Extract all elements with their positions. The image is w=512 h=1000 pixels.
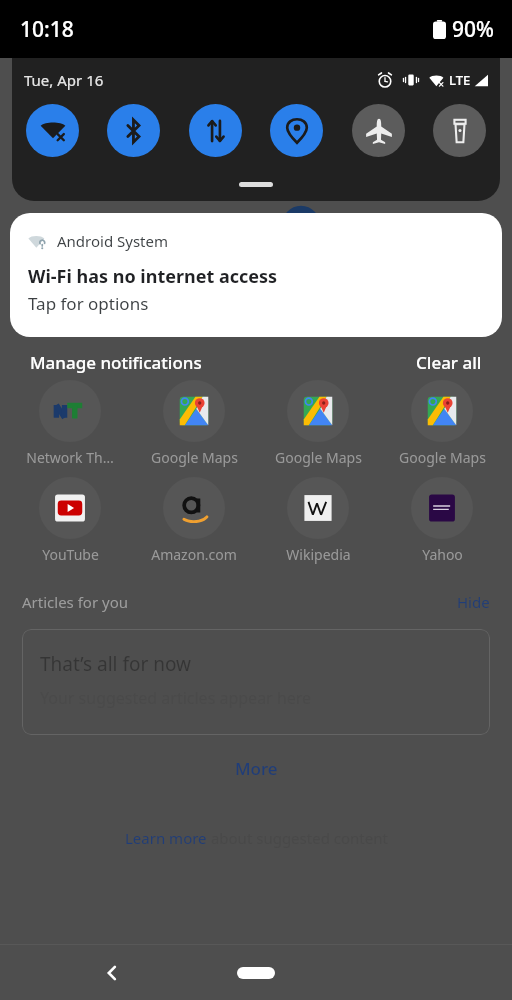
button[interactable]: Flashlight <box>433 104 486 157</box>
button[interactable]: Airplane mode <box>352 104 405 157</box>
staticText: 90% <box>452 15 494 44</box>
staticText: Tue, Apr 16 <box>24 70 104 90</box>
staticText: More <box>235 757 278 780</box>
staticText: Yahoo <box>422 545 463 564</box>
staticText: 10:18 <box>20 15 74 44</box>
button[interactable]: Bluetooth <box>107 104 160 157</box>
button[interactable]: Google Maps <box>388 380 496 467</box>
staticText: Google Maps <box>275 448 362 467</box>
button[interactable]: Location <box>270 104 323 157</box>
staticText: That’s all for now <box>40 651 192 677</box>
button[interactable]: Wikipedia <box>264 477 372 564</box>
button[interactable]: Back <box>92 953 132 993</box>
button[interactable]: Manage notifications <box>30 351 202 374</box>
staticText: Manage notifications <box>30 351 202 374</box>
button[interactable]: Clear all <box>416 351 482 374</box>
button[interactable]: Yahoo <box>388 477 496 564</box>
button[interactable]: That’s all for now <box>22 629 490 735</box>
button[interactable]: Wi-Fi <box>26 104 79 157</box>
button[interactable]: Learn more <box>125 828 207 848</box>
staticText: Google Maps <box>151 448 238 467</box>
staticText: Wi-Fi has no internet access <box>28 264 278 289</box>
button[interactable]: Hide <box>457 592 490 612</box>
staticText: LTE <box>449 71 471 89</box>
staticText: Wikipedia <box>286 545 351 564</box>
staticText: Android System <box>57 231 169 251</box>
button[interactable]: YouTube <box>16 477 124 564</box>
button[interactable]: Mobile data <box>189 104 242 157</box>
staticText: Tap for options <box>28 292 149 315</box>
button[interactable]: Amazon.com <box>140 477 248 564</box>
button[interactable]: Network Th… <box>16 380 124 467</box>
button[interactable]: Android System <box>10 213 502 337</box>
staticText: Articles for you <box>22 592 129 612</box>
button[interactable]: Home <box>226 958 286 988</box>
button[interactable]: More <box>227 749 286 788</box>
staticText: Google Maps <box>399 448 486 467</box>
staticText: Learn more <box>125 828 207 848</box>
staticText: Hide <box>457 592 490 612</box>
staticText: Clear all <box>416 351 482 374</box>
staticText: Network Th… <box>26 448 114 467</box>
staticText: Amazon.com <box>151 545 237 564</box>
button[interactable]: Google Maps <box>140 380 248 467</box>
button[interactable]: Google Maps <box>264 380 372 467</box>
staticText: YouTube <box>42 545 99 564</box>
